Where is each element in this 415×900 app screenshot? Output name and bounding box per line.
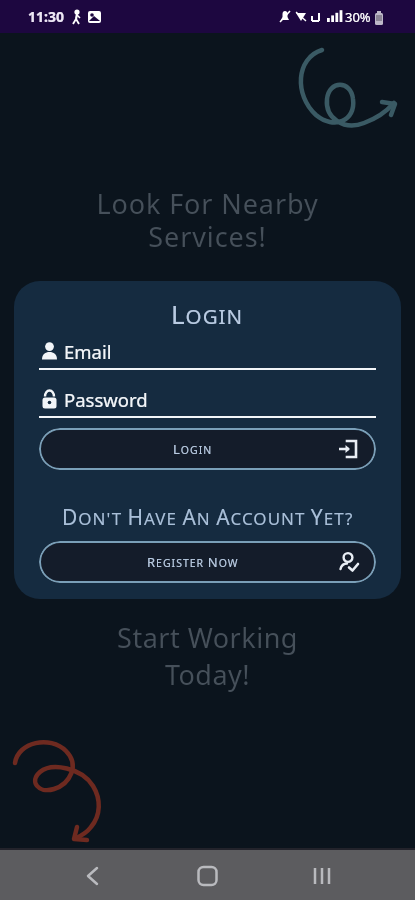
staticText: DON'T HAVE AN ACCOUNT YET? (62, 503, 354, 527)
staticText: 11:30 (28, 7, 64, 26)
button[interactable]: Password (39, 386, 376, 418)
staticText: 30% (345, 8, 371, 26)
button[interactable]: REGISTER NOW (39, 541, 376, 583)
button[interactable] (0, 848, 139, 900)
staticText: REGISTER NOW (147, 553, 239, 571)
staticText: LOGIN (171, 296, 244, 324)
staticText: Look For Nearby Services! (0, 185, 415, 255)
staticText: Password (64, 387, 148, 412)
button[interactable]: LOGIN (39, 428, 376, 470)
button[interactable]: Email (39, 338, 376, 370)
button[interactable] (139, 848, 277, 900)
staticText: LOGIN (173, 440, 213, 458)
staticText: Start Working Today! (0, 619, 415, 693)
button[interactable] (277, 848, 415, 900)
staticText: Email (64, 339, 112, 364)
